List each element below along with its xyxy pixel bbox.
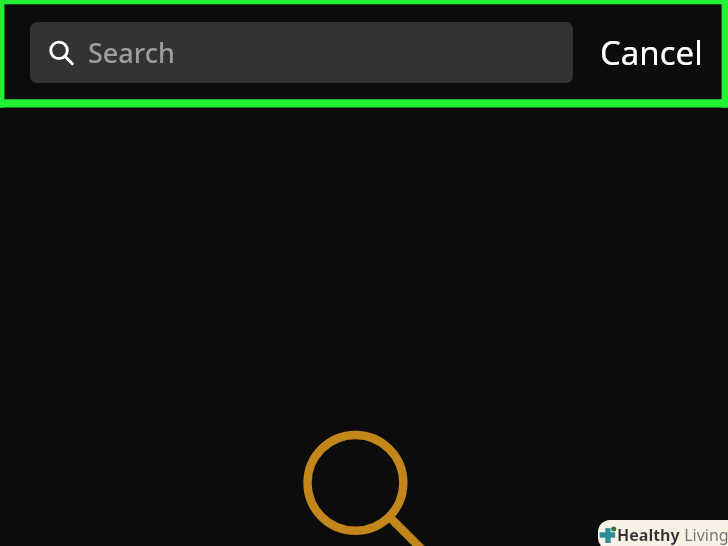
staticText: Living: [680, 524, 728, 546]
button[interactable]: Search: [30, 22, 573, 83]
staticText: Healthy: [617, 524, 680, 546]
staticText: Search: [88, 34, 175, 71]
staticText: Cancel: [600, 30, 703, 75]
other: Search: [49, 40, 75, 66]
button[interactable]: Cancel: [588, 22, 714, 83]
